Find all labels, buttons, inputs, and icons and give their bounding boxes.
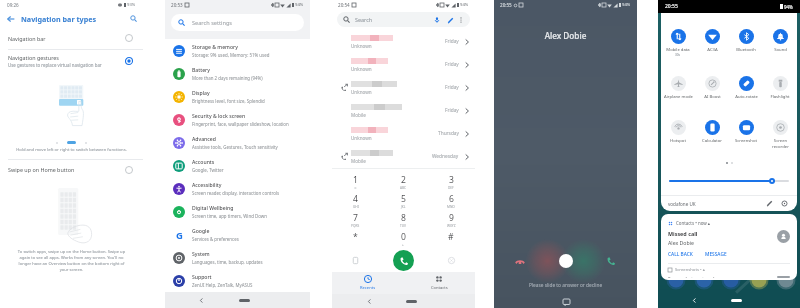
button[interactable]: Unknown	[332, 122, 475, 145]
button[interactable]: Flashlight	[763, 76, 797, 100]
staticText: Alex Dobie	[668, 239, 694, 246]
button[interactable]: Edit	[445, 15, 455, 25]
button[interactable]: Accessibility	[165, 177, 310, 200]
staticText: Screenshot captured	[668, 276, 715, 278]
staticText: Please slide to answer or decline	[494, 282, 637, 289]
button[interactable]: Screen recorder	[763, 120, 797, 149]
button[interactable]: Bluetooth	[729, 29, 763, 53]
button[interactable]: Mobile data	[661, 29, 695, 57]
button[interactable]: Back	[194, 293, 208, 307]
button[interactable]: 2	[379, 172, 427, 191]
button[interactable]: Airplane mode	[661, 76, 695, 100]
button[interactable]: Search settings	[171, 14, 304, 31]
button[interactable]: AI Boost	[695, 76, 729, 100]
button[interactable]: Search	[337, 12, 470, 27]
button[interactable]: Select option	[122, 31, 136, 45]
button[interactable]: Home	[233, 293, 255, 307]
button[interactable]: Storage & memory	[165, 39, 310, 62]
button[interactable]: Send message	[560, 297, 572, 308]
button[interactable]: Unknown	[332, 76, 475, 99]
staticText: Alex Dobie	[494, 30, 637, 41]
staticText: ZenUI Help, ZenTalk, MyASUS	[192, 282, 253, 288]
button[interactable]: 6	[427, 191, 475, 210]
button[interactable]: Back	[362, 294, 376, 308]
button[interactable]: Select option	[122, 163, 136, 177]
button[interactable]: Hotspot	[661, 120, 695, 144]
button[interactable]: 9	[427, 210, 475, 229]
staticText: Screen time, app timers, Wind Down	[192, 213, 267, 219]
button[interactable]: *	[332, 229, 379, 248]
staticText: Accessibility	[192, 182, 222, 189]
staticText: +	[402, 243, 404, 247]
button[interactable]: 7	[332, 210, 379, 229]
button[interactable]: System	[165, 246, 310, 269]
button[interactable]: Recents	[332, 272, 403, 294]
button[interactable]: Screenshot	[729, 120, 763, 144]
button[interactable]: Back	[687, 293, 701, 307]
button[interactable]: 4	[332, 191, 379, 210]
button[interactable]: Sound	[763, 29, 797, 53]
button[interactable]: Mobile	[332, 145, 475, 168]
staticText: 93%	[127, 2, 136, 8]
button[interactable]: Add contact	[332, 248, 379, 272]
staticText: ABC	[400, 186, 407, 190]
staticText: Storage: 9% used, Memory: 51% used	[192, 52, 270, 58]
button[interactable]: Backspace	[427, 248, 475, 272]
button[interactable]: Contacts	[403, 272, 475, 294]
staticText: 5	[401, 193, 406, 205]
button[interactable]: Settings	[779, 198, 790, 209]
staticText: Hold and move left or right to switch be…	[4, 147, 139, 153]
button[interactable]: MESSAGE	[705, 251, 727, 258]
button[interactable]: More options	[457, 16, 465, 24]
staticText: 30s	[675, 53, 681, 57]
staticText: Security & lock screen	[192, 113, 246, 120]
button[interactable]: Mobile	[332, 99, 475, 122]
button[interactable]: Call	[393, 250, 414, 271]
button[interactable]: Edit tiles	[764, 198, 775, 209]
staticText: Contacts • now ▴	[676, 220, 711, 226]
staticText: Airplane mode	[664, 94, 693, 100]
button[interactable]: Search	[123, 10, 143, 27]
button[interactable]: 5	[379, 191, 427, 210]
button[interactable]: Display	[165, 85, 310, 108]
button[interactable]: 8	[379, 210, 427, 229]
button[interactable]: Security & lock screen	[165, 108, 310, 131]
button[interactable]: 1	[332, 172, 379, 191]
staticText: Search settings	[192, 19, 233, 27]
staticText: MESSAGE	[705, 251, 727, 258]
button[interactable]: 0	[379, 229, 427, 248]
button[interactable]: G	[165, 223, 310, 246]
button[interactable]: CALL BACK	[668, 251, 705, 258]
staticText: WXYZ	[447, 224, 456, 228]
button[interactable]: Support	[165, 269, 310, 292]
button[interactable]: Unknown	[332, 30, 475, 53]
button[interactable]: Digital Wellbeing	[165, 200, 310, 223]
button[interactable]: Navigation bar	[0, 27, 143, 49]
staticText: Services & preferences	[192, 236, 239, 242]
button[interactable]: Decline	[513, 254, 527, 268]
staticText: Mobile	[351, 112, 366, 118]
staticText: Mobile data	[666, 47, 690, 53]
button[interactable]: Answer	[604, 254, 618, 268]
staticText: Google, Twitter	[192, 167, 224, 173]
staticText: 94%	[784, 4, 793, 10]
staticText: 20:55	[665, 3, 678, 10]
button[interactable]: Voice search	[432, 15, 442, 25]
button[interactable]: Accounts	[165, 154, 310, 177]
button[interactable]: Auto-rotate	[729, 76, 763, 100]
staticText: ∞	[354, 186, 357, 190]
button[interactable]: Navigation gestures	[0, 50, 143, 72]
button[interactable]: AC3A	[695, 29, 729, 53]
button[interactable]: Home	[725, 293, 747, 307]
button[interactable]: Back	[0, 10, 21, 27]
button[interactable]: Unknown	[332, 53, 475, 76]
button[interactable]: Calculator	[695, 120, 729, 144]
button[interactable]: Swipe up on Home button	[0, 160, 143, 179]
button[interactable]: 3	[427, 172, 475, 191]
button[interactable]: Slide to answer	[559, 254, 573, 268]
button[interactable]: Battery	[165, 62, 310, 85]
button[interactable]: Home	[400, 294, 422, 308]
button[interactable]: Select option	[122, 54, 136, 68]
button[interactable]: #	[427, 229, 475, 248]
button[interactable]: Advanced	[165, 131, 310, 154]
